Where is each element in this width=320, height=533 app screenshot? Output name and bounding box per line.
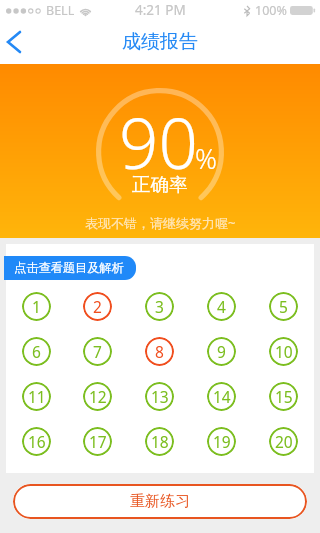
button[interactable]: 10 — [269, 337, 298, 366]
button[interactable]: 6 — [22, 337, 51, 366]
button[interactable]: 7 — [83, 337, 112, 366]
staticText: 100% — [255, 2, 287, 19]
staticText: 2 — [93, 296, 102, 317]
staticText: 12 — [89, 386, 107, 407]
button[interactable]: 返回 — [0, 20, 44, 64]
staticText: 6 — [32, 341, 41, 362]
staticText: 1 — [32, 296, 41, 317]
staticText: 20 — [275, 431, 293, 452]
staticText: 8 — [155, 341, 164, 362]
staticText: 正确率 — [132, 173, 188, 196]
staticText: 5 — [279, 296, 288, 317]
staticText: 9 — [217, 341, 226, 362]
staticText: 重新练习 — [130, 492, 190, 511]
staticText: 7 — [93, 341, 102, 362]
staticText: 11 — [28, 386, 46, 407]
staticText: 90 — [119, 95, 198, 189]
staticText: 17 — [89, 431, 107, 452]
button[interactable]: 8 — [145, 337, 174, 366]
staticText: 点击查看题目及解析 — [14, 260, 124, 275]
button[interactable]: 16 — [22, 427, 51, 456]
staticText: 成绩报告 — [122, 30, 198, 54]
staticText: 14 — [213, 386, 231, 407]
staticText: 4 — [217, 296, 226, 317]
button[interactable]: 4 — [207, 292, 236, 321]
button[interactable]: 3 — [145, 292, 174, 321]
button[interactable]: 13 — [145, 382, 174, 411]
staticText: BELL — [46, 2, 75, 19]
staticText: 3 — [155, 296, 164, 317]
button[interactable]: 20 — [269, 427, 298, 456]
button[interactable]: 9 — [207, 337, 236, 366]
button[interactable]: 12 — [83, 382, 112, 411]
button[interactable]: 5 — [269, 292, 298, 321]
staticText: % — [195, 140, 217, 177]
button[interactable]: 重新练习 — [13, 484, 307, 519]
button[interactable]: 14 — [207, 382, 236, 411]
staticText: 16 — [28, 431, 46, 452]
staticText: 13 — [151, 386, 169, 407]
button[interactable]: 1 — [22, 292, 51, 321]
button[interactable]: 17 — [83, 427, 112, 456]
button[interactable]: 15 — [269, 382, 298, 411]
staticText: 15 — [275, 386, 293, 407]
staticText: 19 — [213, 431, 231, 452]
button[interactable]: 11 — [22, 382, 51, 411]
staticText: 18 — [151, 431, 169, 452]
button[interactable]: 18 — [145, 427, 174, 456]
staticText: 表现不错，请继续努力喔~ — [85, 214, 236, 232]
button[interactable]: 点击查看题目及解析 — [4, 256, 136, 280]
button[interactable]: 19 — [207, 427, 236, 456]
button[interactable]: 2 — [83, 292, 112, 321]
staticText: 4:21 PM — [135, 1, 186, 19]
staticText: 10 — [275, 341, 293, 362]
